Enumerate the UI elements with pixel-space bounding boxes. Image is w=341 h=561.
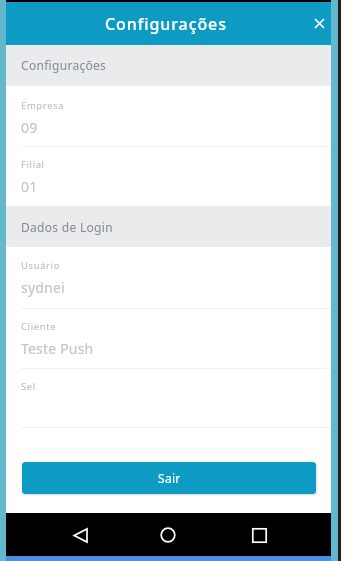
staticText: Dados de Login [21,219,113,235]
button[interactable]: Usuário [6,247,331,309]
button[interactable]: Recentes [239,515,279,555]
staticText: 01 [21,177,38,196]
button[interactable]: Cliente [6,309,331,369]
button[interactable]: Empresa [6,86,331,147]
button[interactable]: Filial [6,147,331,206]
staticText: Configurações [21,57,107,73]
button[interactable]: Fechar [308,12,330,34]
staticText: Sel [21,380,36,393]
staticText: Configurações [105,13,227,35]
button[interactable]: Voltar [60,515,100,555]
button[interactable]: Sair [22,462,316,494]
staticText: Teste Push [21,339,94,358]
button[interactable]: Início [148,515,188,555]
staticText: Usuário [21,259,61,272]
staticText: sydnei [21,278,65,297]
staticText: Empresa [21,99,65,112]
staticText: Filial [21,158,45,171]
staticText: Sair [158,470,181,486]
staticText: 09 [21,118,38,137]
staticText: Cliente [21,320,57,333]
